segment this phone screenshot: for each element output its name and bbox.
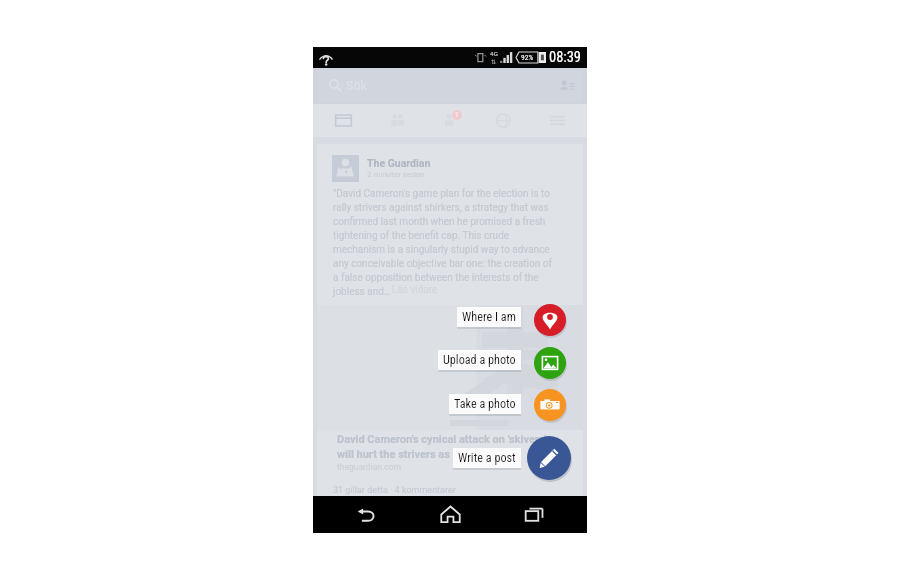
staticText: "David Cameron's game plan for the elect… — [333, 188, 552, 297]
staticText: Läs vidare — [392, 284, 438, 296]
button[interactable] — [317, 144, 583, 496]
button[interactable]: Take a photo — [449, 394, 521, 414]
staticText: 08:39 — [549, 49, 582, 66]
button[interactable]: Where I am — [534, 304, 566, 336]
staticText: ⇅ — [491, 58, 497, 65]
button[interactable]: Back — [335, 496, 397, 533]
button[interactable]: Where I am — [457, 307, 521, 327]
button[interactable]: Home — [419, 496, 481, 533]
button[interactable]: Upload a photo — [438, 350, 521, 370]
button[interactable]: Write a post — [453, 448, 521, 468]
staticText: Where I am — [462, 310, 516, 324]
staticText: Upload a photo — [443, 353, 516, 367]
button[interactable]: Notifications — [427, 104, 473, 137]
staticText: 1 — [455, 111, 459, 119]
staticText: 31 gillar detta · 4 kommentarer — [333, 485, 456, 496]
button[interactable]: News feed — [320, 104, 366, 137]
staticText: David Cameron's cynical attack on 'skive… — [337, 433, 547, 461]
button[interactable]: Take a photo — [534, 389, 566, 421]
staticText: The Guardian — [367, 157, 431, 169]
staticText: Write a post — [458, 451, 516, 465]
staticText: Take a photo — [454, 397, 516, 411]
staticText: Sök — [346, 78, 367, 93]
button[interactable]: Recents — [503, 496, 565, 533]
button[interactable]: Friend requests — [559, 78, 575, 94]
button[interactable]: Upload a photo — [534, 347, 566, 379]
staticText: 2 minuter sedan · — [367, 170, 431, 179]
staticText: 92% — [521, 53, 534, 62]
button[interactable]: Write a post — [527, 436, 571, 480]
staticText: theguardian.com — [337, 462, 402, 472]
staticText: 4G — [490, 50, 498, 58]
